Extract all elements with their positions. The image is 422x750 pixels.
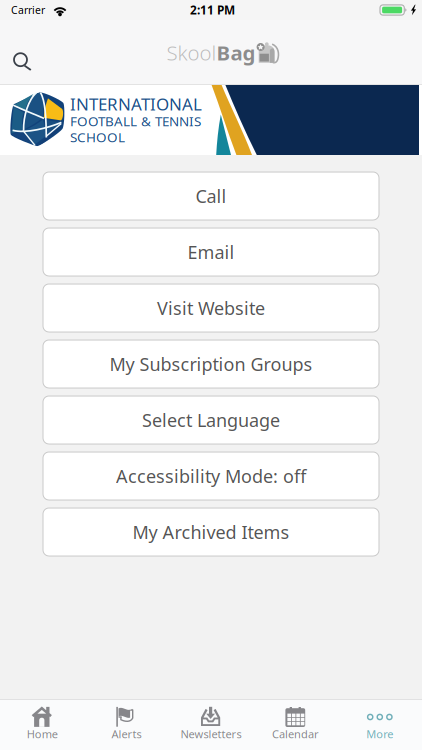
- button[interactable]: Call: [43, 172, 379, 220]
- staticText: Visit Website: [157, 296, 265, 320]
- staticText: SCHOOL: [70, 128, 125, 146]
- staticText: Home: [27, 726, 58, 742]
- button[interactable]: Search: [1, 40, 45, 84]
- staticText: Alerts: [112, 726, 142, 742]
- staticText: Calendar: [272, 726, 319, 742]
- staticText: My Subscription Groups: [109, 352, 312, 376]
- button[interactable]: Select Language: [43, 396, 379, 444]
- button[interactable]: Home: [0, 699, 84, 750]
- button[interactable]: More: [338, 699, 422, 750]
- staticText: Newsletters: [180, 726, 241, 742]
- staticText: Bag: [216, 39, 255, 66]
- button[interactable]: Email: [43, 228, 379, 276]
- staticText: INTERNATIONAL: [70, 92, 202, 116]
- staticText: My Archived Items: [132, 520, 289, 544]
- staticText: FOOTBALL & TENNIS: [70, 112, 201, 130]
- staticText: Call: [195, 184, 226, 208]
- staticText: 2:11 PM: [190, 2, 235, 18]
- button[interactable]: Newsletters: [169, 699, 253, 750]
- staticText: Select Language: [142, 408, 280, 432]
- button[interactable]: My Archived Items: [43, 508, 379, 556]
- staticText: Email: [187, 240, 234, 264]
- staticText: More: [366, 726, 393, 742]
- button[interactable]: My Subscription Groups: [43, 340, 379, 388]
- button[interactable]: Visit Website: [43, 284, 379, 332]
- button[interactable]: Alerts: [84, 699, 169, 750]
- staticText: Carrier: [11, 3, 45, 17]
- button[interactable]: Accessibility Mode: off: [43, 452, 379, 500]
- staticText: Skool: [166, 39, 216, 66]
- staticText: Accessibility Mode: off: [116, 464, 306, 488]
- button[interactable]: Calendar: [253, 699, 338, 750]
